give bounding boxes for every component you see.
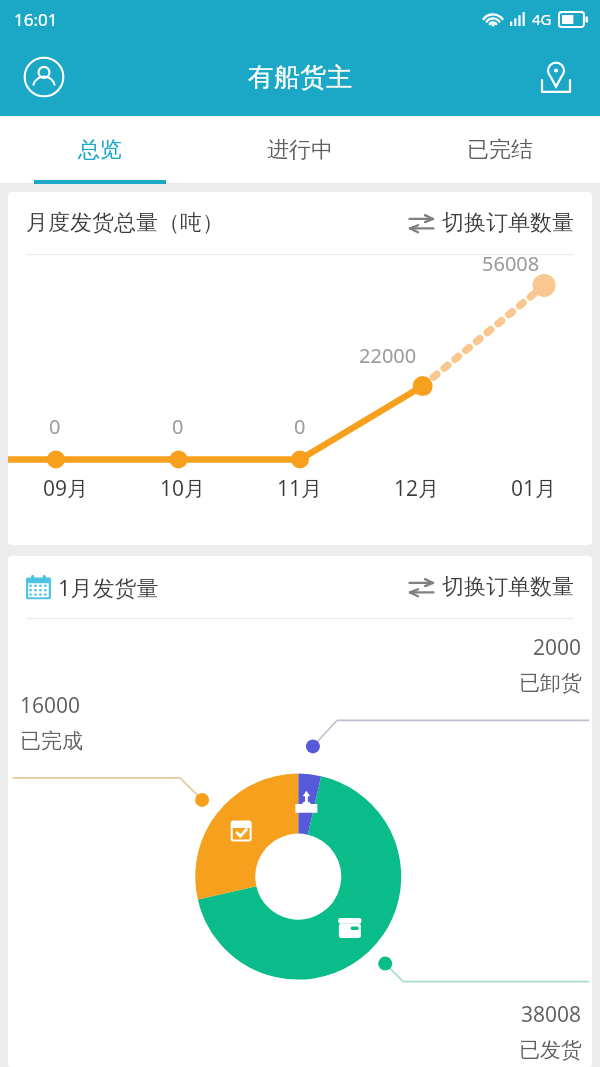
staticText: 16:01 bbox=[14, 8, 58, 31]
staticText: 22000 bbox=[359, 342, 417, 369]
staticText: 切换订单数量 bbox=[442, 573, 574, 601]
staticText: 09月 bbox=[43, 474, 89, 503]
staticText: 切换订单数量 bbox=[442, 209, 574, 237]
button[interactable]: Profile bbox=[18, 51, 70, 103]
button[interactable]: 进行中 bbox=[200, 116, 400, 184]
staticText: 已完结 bbox=[467, 136, 533, 164]
staticText: 已完成 bbox=[20, 728, 83, 754]
staticText: 4G bbox=[532, 9, 552, 29]
staticText: 已发货 bbox=[519, 1037, 582, 1063]
staticText: 12月 bbox=[394, 474, 440, 503]
staticText: 进行中 bbox=[267, 136, 333, 164]
button[interactable]: 切换订单数量 bbox=[409, 573, 574, 601]
button[interactable]: 总览 bbox=[0, 116, 200, 184]
staticText: 0 bbox=[172, 413, 184, 440]
staticText: 已卸货 bbox=[519, 670, 582, 696]
staticText: 56008 bbox=[482, 250, 540, 277]
staticText: 2000 bbox=[533, 633, 582, 662]
button[interactable]: 已完结 bbox=[400, 116, 600, 184]
staticText: 1月发货量 bbox=[58, 572, 159, 602]
staticText: 11月 bbox=[277, 474, 323, 503]
button[interactable]: Map location bbox=[530, 51, 582, 103]
staticText: 10月 bbox=[160, 474, 206, 503]
staticText: 0 bbox=[294, 413, 306, 440]
staticText: 有船货主 bbox=[248, 61, 352, 94]
staticText: 38008 bbox=[521, 1000, 582, 1029]
staticText: 0 bbox=[49, 413, 61, 440]
button[interactable]: 切换订单数量 bbox=[409, 209, 574, 237]
staticText: 月度发货总量（吨） bbox=[26, 209, 224, 237]
staticText: 16000 bbox=[20, 691, 81, 720]
staticText: 总览 bbox=[78, 136, 122, 164]
staticText: 01月 bbox=[511, 474, 557, 503]
